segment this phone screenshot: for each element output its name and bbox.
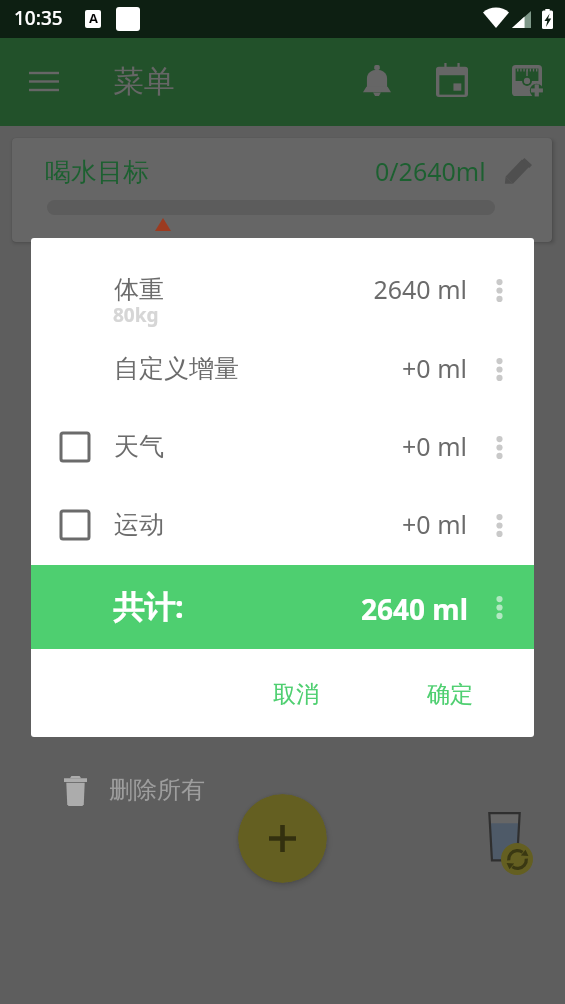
button[interactable]: More options (481, 429, 517, 465)
button[interactable]: 删除所有 (54, 768, 207, 814)
staticText: 自定义增量 (114, 353, 239, 384)
staticText: +0 ml (402, 429, 467, 463)
button[interactable]: 自定义增量 (31, 330, 534, 408)
staticText: +0 ml (402, 351, 467, 385)
staticText: 0/2640ml (375, 154, 486, 188)
button[interactable]: Add water (238, 794, 327, 883)
staticText: 取消 (273, 680, 319, 709)
staticText: 共计: (113, 585, 184, 627)
button[interactable]: 天气 (31, 408, 534, 486)
staticText: 80kg (113, 302, 159, 328)
button[interactable]: More options (481, 589, 517, 625)
button[interactable]: 取消 (253, 670, 339, 718)
staticText: 喝水目标 (45, 156, 149, 189)
button[interactable]: Menu (17, 56, 69, 108)
button[interactable]: 体重 (31, 250, 534, 330)
staticText: 菜单 (113, 62, 175, 101)
staticText: 运动 (114, 509, 164, 540)
button[interactable]: Edit goal (504, 158, 532, 184)
button[interactable]: Notifications (352, 57, 402, 107)
staticText: 天气 (114, 431, 164, 462)
staticText: 确定 (427, 680, 473, 709)
button[interactable]: More options (481, 351, 517, 387)
button[interactable]: More options (481, 507, 517, 543)
staticText: 体重 (114, 274, 164, 305)
staticText: 2640 ml (373, 272, 467, 306)
button[interactable]: 运动 (31, 486, 534, 564)
button[interactable]: More options (481, 272, 517, 308)
staticText: 删除所有 (109, 775, 205, 805)
staticText: +0 ml (402, 507, 467, 541)
staticText: A (89, 10, 98, 27)
staticText: 2640 ml (361, 590, 468, 628)
staticText: 10:35 (14, 5, 63, 31)
button[interactable]: Add weight (500, 57, 550, 107)
button[interactable]: 共计: (31, 565, 534, 649)
button[interactable]: 喝水目标 (12, 138, 552, 242)
button[interactable]: 确定 (407, 670, 493, 718)
button[interactable]: Change cup (501, 843, 533, 875)
button[interactable]: Calendar (424, 57, 474, 107)
